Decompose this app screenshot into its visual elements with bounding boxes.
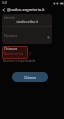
staticText: 3 (29, 52, 31, 56)
button[interactable]: Chiama (12, 72, 48, 82)
staticText: Password (4, 34, 18, 38)
staticText: Notizie nel tuo (4, 52, 24, 56)
button[interactable]: Back (1, 7, 7, 13)
staticText: studio.unibo.it (2, 20, 38, 24)
button[interactable]: Chiusura (2, 46, 28, 59)
staticText: Numero responsabile (3, 59, 36, 63)
staticText: Chiama (24, 75, 37, 80)
staticText: 9:41 (2, 1, 8, 5)
staticText: @unibo-segreteria.it (7, 7, 45, 12)
staticText: Identità (4, 16, 15, 20)
staticText: Chiusura (4, 47, 17, 51)
